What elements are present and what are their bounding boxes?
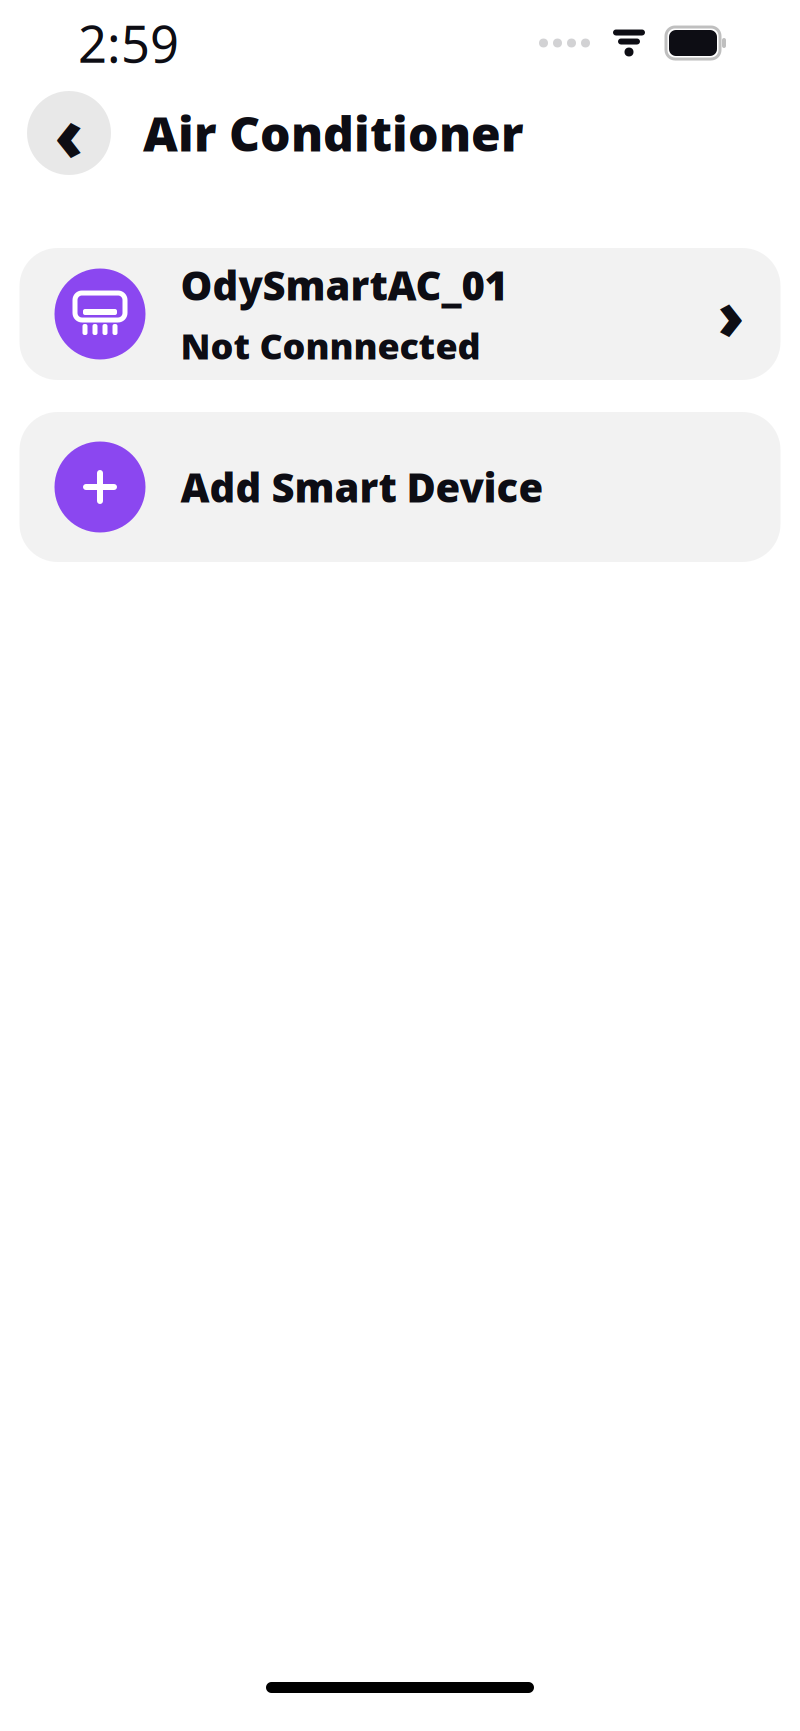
staticText: OdySmartAC_01 [180,258,507,312]
staticText: › [717,270,744,358]
staticText: ‹ [54,85,83,181]
staticText: Not Connnected [180,322,480,369]
staticText: Air Conditioner [143,101,524,165]
button[interactable]: Add Smart Device [19,412,780,562]
button[interactable]: Back [27,91,111,175]
button[interactable]: OdySmartAC_01 [19,248,780,380]
staticText: Add Smart Device [180,460,543,513]
staticText: 2:59 [78,9,179,77]
